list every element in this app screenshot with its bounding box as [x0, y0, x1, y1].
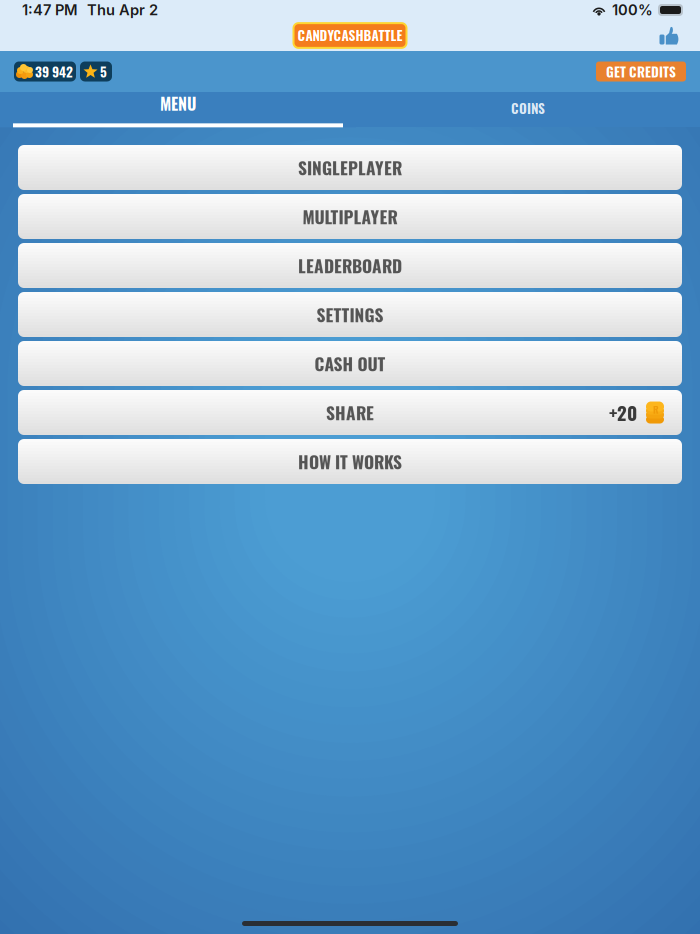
button[interactable]: LEADERBOARD — [18, 243, 682, 288]
button[interactable]: HOW IT WORKS — [18, 439, 682, 484]
staticText: CANDYCASHBATTLE — [297, 25, 402, 45]
button[interactable]: Like — [654, 21, 687, 50]
staticText: 100% — [612, 1, 653, 19]
staticText: 39 942 — [35, 62, 73, 81]
staticText: 1:47 PM — [22, 1, 78, 19]
button[interactable]: SINGLEPLAYER — [18, 145, 682, 190]
staticText: SHARE — [326, 400, 374, 425]
button[interactable]: SHARE — [18, 390, 682, 435]
staticText: GET CREDITS — [606, 62, 676, 81]
staticText: MENU — [160, 92, 196, 115]
button[interactable]: GET CREDITS — [596, 61, 686, 81]
staticText: SETTINGS — [316, 302, 383, 327]
staticText: R — [653, 402, 659, 416]
button[interactable]: CASH OUT — [18, 341, 682, 386]
staticText: 5 — [100, 62, 107, 81]
staticText: +20 — [609, 399, 637, 426]
staticText: Thu Apr 2 — [87, 1, 158, 19]
button[interactable]: COINS — [356, 92, 700, 127]
staticText: LEADERBOARD — [298, 253, 402, 278]
staticText: SINGLEPLAYER — [298, 155, 402, 180]
staticText: COINS — [511, 98, 545, 118]
button[interactable]: SETTINGS — [18, 292, 682, 337]
staticText: HOW IT WORKS — [298, 449, 402, 474]
staticText: MULTIPLAYER — [302, 204, 397, 229]
button[interactable]: MENU — [0, 92, 356, 127]
button[interactable]: MULTIPLAYER — [18, 194, 682, 239]
staticText: CASH OUT — [314, 351, 385, 376]
